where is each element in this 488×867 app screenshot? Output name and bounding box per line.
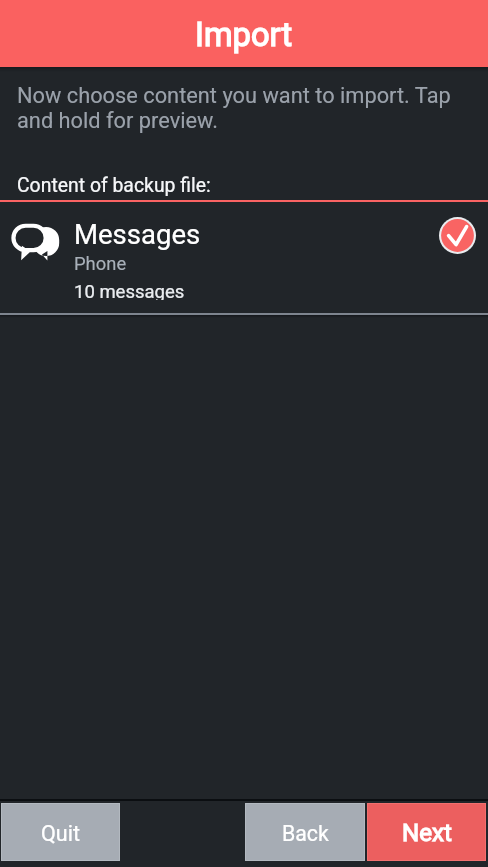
staticText: Quit [41,821,81,846]
other: Messages [11,223,59,263]
button[interactable]: Back [246,804,364,860]
staticText: Content of backup file: [17,174,211,197]
staticText: 10 messages [74,281,185,300]
other: Selected [439,217,476,254]
staticText: Now choose content you want to import. T… [17,83,471,133]
staticText: Next [402,819,452,847]
button[interactable]: Messages [0,202,488,300]
button[interactable]: Next [368,804,485,860]
staticText: Import [195,16,293,54]
staticText: Messages [74,218,201,250]
staticText: Back [282,821,329,846]
button[interactable]: Quit [2,804,119,860]
staticText: Phone [74,253,127,275]
